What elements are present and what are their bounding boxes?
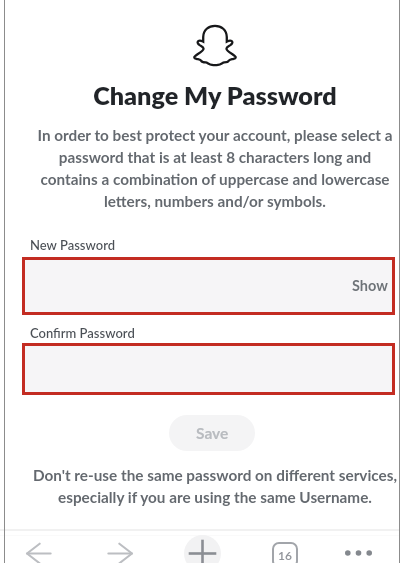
staticText: Show: [352, 277, 388, 294]
button[interactable]: [22, 343, 395, 395]
staticText: In order to best protect your account, p…: [33, 126, 397, 210]
button[interactable]: Tabs: [267, 537, 303, 563]
button[interactable]: More: [340, 535, 376, 563]
staticText: Change My Password: [93, 80, 337, 110]
staticText: Confirm Password: [30, 325, 135, 341]
button[interactable]: New tab: [180, 531, 224, 563]
button[interactable]: Forward: [98, 531, 142, 563]
staticText: New Password: [30, 237, 116, 253]
staticText: 16: [278, 548, 292, 562]
staticText: Save: [196, 424, 229, 443]
button[interactable]: Show: [22, 257, 395, 315]
button[interactable]: Back: [16, 531, 60, 563]
button[interactable]: Save: [169, 415, 255, 451]
staticText: Don't re-use the same password on differ…: [32, 466, 398, 506]
